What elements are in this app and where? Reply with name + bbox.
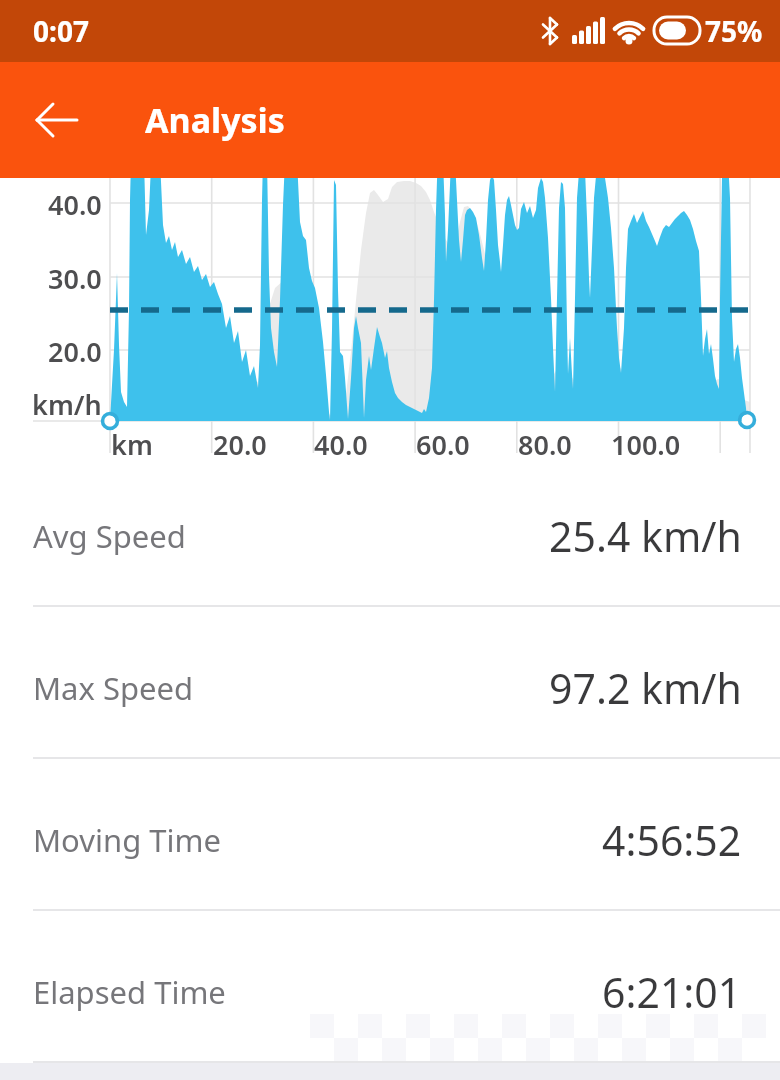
- staticText: 75%: [705, 12, 763, 50]
- button[interactable]: [20, 83, 94, 157]
- button[interactable]: Max Speed: [0, 607, 780, 759]
- staticText: 97.2 km/h: [549, 660, 742, 716]
- staticText: Moving Time: [33, 819, 221, 861]
- staticText: 25.4 km/h: [549, 508, 742, 564]
- staticText: Max Speed: [33, 667, 194, 709]
- staticText: 30.0: [48, 260, 102, 294]
- staticText: 0:07: [33, 12, 89, 50]
- staticText: Analysis: [145, 97, 285, 143]
- staticText: km/h: [32, 386, 102, 420]
- button[interactable]: Elapsed Time: [0, 911, 780, 1063]
- button[interactable]: Moving Time: [0, 759, 780, 911]
- staticText: 6:21:01: [602, 964, 742, 1020]
- staticText: Elapsed Time: [33, 971, 226, 1013]
- staticText: 20.0: [213, 426, 267, 455]
- staticText: 100.0: [611, 426, 681, 455]
- staticText: km: [111, 426, 153, 455]
- staticText: 4:56:52: [602, 812, 742, 868]
- staticText: 40.0: [314, 426, 368, 455]
- staticText: 60.0: [416, 426, 470, 455]
- button[interactable]: Avg Speed: [0, 455, 780, 607]
- staticText: 40.0: [48, 186, 102, 220]
- staticText: 80.0: [518, 426, 572, 455]
- staticText: Avg Speed: [33, 515, 186, 557]
- staticText: 20.0: [48, 333, 102, 367]
